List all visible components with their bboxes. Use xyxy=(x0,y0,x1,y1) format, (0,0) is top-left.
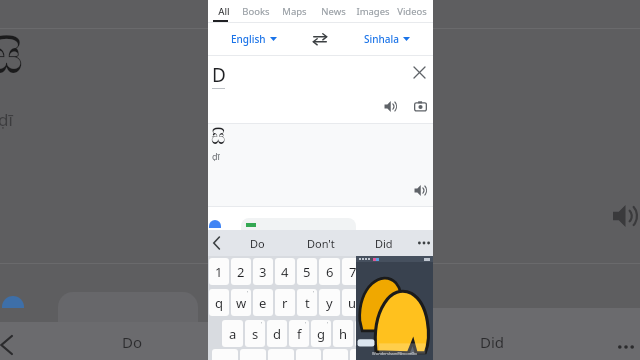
button[interactable]: Don't xyxy=(289,230,352,256)
staticText: o xyxy=(395,294,403,312)
button[interactable]: 2 xyxy=(231,258,251,285)
button[interactable]: p xyxy=(411,289,432,316)
button[interactable]: English xyxy=(208,23,300,55)
staticText: Did xyxy=(375,236,393,251)
staticText: ḍī xyxy=(212,150,220,162)
button[interactable]: 6 xyxy=(319,258,340,285)
button[interactable]: o xyxy=(388,289,409,316)
staticText: 6 xyxy=(326,263,334,281)
staticText: Do xyxy=(250,236,265,251)
button[interactable]: ' xyxy=(289,320,309,347)
button[interactable]: 0 xyxy=(411,258,432,285)
button[interactable]: Camera input xyxy=(409,95,431,117)
staticText: ' xyxy=(261,321,263,328)
button[interactable]: 3 xyxy=(253,258,273,285)
staticText: Maps xyxy=(282,5,307,18)
button[interactable]: News xyxy=(314,0,353,22)
staticText: ' xyxy=(313,290,315,297)
button[interactable] xyxy=(350,349,375,360)
staticText: ' xyxy=(305,321,307,328)
button[interactable]: Previous xyxy=(209,235,225,251)
staticText: 2 xyxy=(237,263,245,281)
staticText: f xyxy=(297,325,302,343)
button[interactable] xyxy=(212,349,238,360)
button[interactable]: r xyxy=(275,289,295,316)
button[interactable]: 8 xyxy=(365,258,386,285)
staticText: News xyxy=(321,5,346,18)
staticText: සි xyxy=(211,128,226,148)
button[interactable]: y xyxy=(319,289,340,316)
staticText: ḍī xyxy=(0,108,13,131)
button[interactable]: Picture in picture video xyxy=(356,256,433,360)
staticText: t xyxy=(305,294,310,312)
staticText: ' xyxy=(327,321,329,328)
staticText: 8 xyxy=(372,263,380,281)
staticText: 1 xyxy=(215,263,223,281)
button[interactable]: a xyxy=(222,320,243,347)
staticText: p xyxy=(418,294,426,312)
staticText: All xyxy=(218,5,230,18)
button[interactable] xyxy=(404,349,429,360)
button[interactable]: u xyxy=(342,289,363,316)
staticText: w xyxy=(236,294,247,312)
button[interactable]: Listen to translation xyxy=(409,179,431,201)
staticText: r xyxy=(282,294,288,312)
staticText: Videos xyxy=(397,5,427,18)
staticText: Don't xyxy=(307,236,335,251)
button[interactable]: d xyxy=(267,320,287,347)
button[interactable]: Maps xyxy=(275,0,314,22)
button[interactable] xyxy=(240,349,266,360)
staticText: ' xyxy=(247,290,249,297)
staticText: l xyxy=(407,325,411,343)
button[interactable]: Do xyxy=(226,230,289,256)
staticText: සි xyxy=(0,36,24,82)
button[interactable]: ' xyxy=(311,320,331,347)
button[interactable]: Swap languages xyxy=(300,23,340,55)
button[interactable] xyxy=(296,349,321,360)
button[interactable]: l xyxy=(399,320,419,347)
staticText: 3 xyxy=(259,263,267,281)
button[interactable]: i xyxy=(365,289,386,316)
staticText: 7 xyxy=(349,263,357,281)
staticText: d xyxy=(273,325,281,343)
button[interactable]: 4 xyxy=(275,258,295,285)
button[interactable] xyxy=(377,349,402,360)
button[interactable]: All xyxy=(212,0,236,22)
button[interactable]: 9 xyxy=(388,258,409,285)
button[interactable]: h xyxy=(333,320,353,347)
button[interactable]: Videos xyxy=(392,0,431,22)
button[interactable]: e xyxy=(253,289,273,316)
button[interactable]: Books xyxy=(236,0,275,22)
staticText: j xyxy=(363,325,367,343)
staticText: 5 xyxy=(303,263,311,281)
button[interactable] xyxy=(323,349,348,360)
staticText: D xyxy=(212,62,226,88)
button[interactable]: 7 xyxy=(342,258,363,285)
staticText: g xyxy=(317,325,325,343)
button[interactable]: q xyxy=(209,289,229,316)
button[interactable]: Clear xyxy=(409,62,429,82)
staticText: 4 xyxy=(281,263,289,281)
button[interactable] xyxy=(268,349,294,360)
staticText: Sinhala xyxy=(364,32,399,46)
button[interactable]: Did xyxy=(352,230,415,256)
button[interactable]: ' xyxy=(245,320,265,347)
staticText: Books xyxy=(242,5,270,18)
button[interactable]: Sinhala xyxy=(340,23,433,55)
button[interactable]: 5 xyxy=(297,258,317,285)
button[interactable]: Listen xyxy=(379,95,401,117)
button[interactable]: More suggestions xyxy=(416,235,432,251)
button[interactable]: ' xyxy=(297,289,317,316)
button[interactable]: 1 xyxy=(209,258,229,285)
button[interactable]: k xyxy=(377,320,397,347)
staticText: Images xyxy=(356,5,390,18)
staticText: q xyxy=(215,294,223,312)
button[interactable]: Images xyxy=(353,0,392,22)
staticText: a xyxy=(229,325,237,343)
button[interactable]: ' xyxy=(231,289,251,316)
staticText: h xyxy=(339,325,348,343)
button[interactable]: j xyxy=(355,320,375,347)
